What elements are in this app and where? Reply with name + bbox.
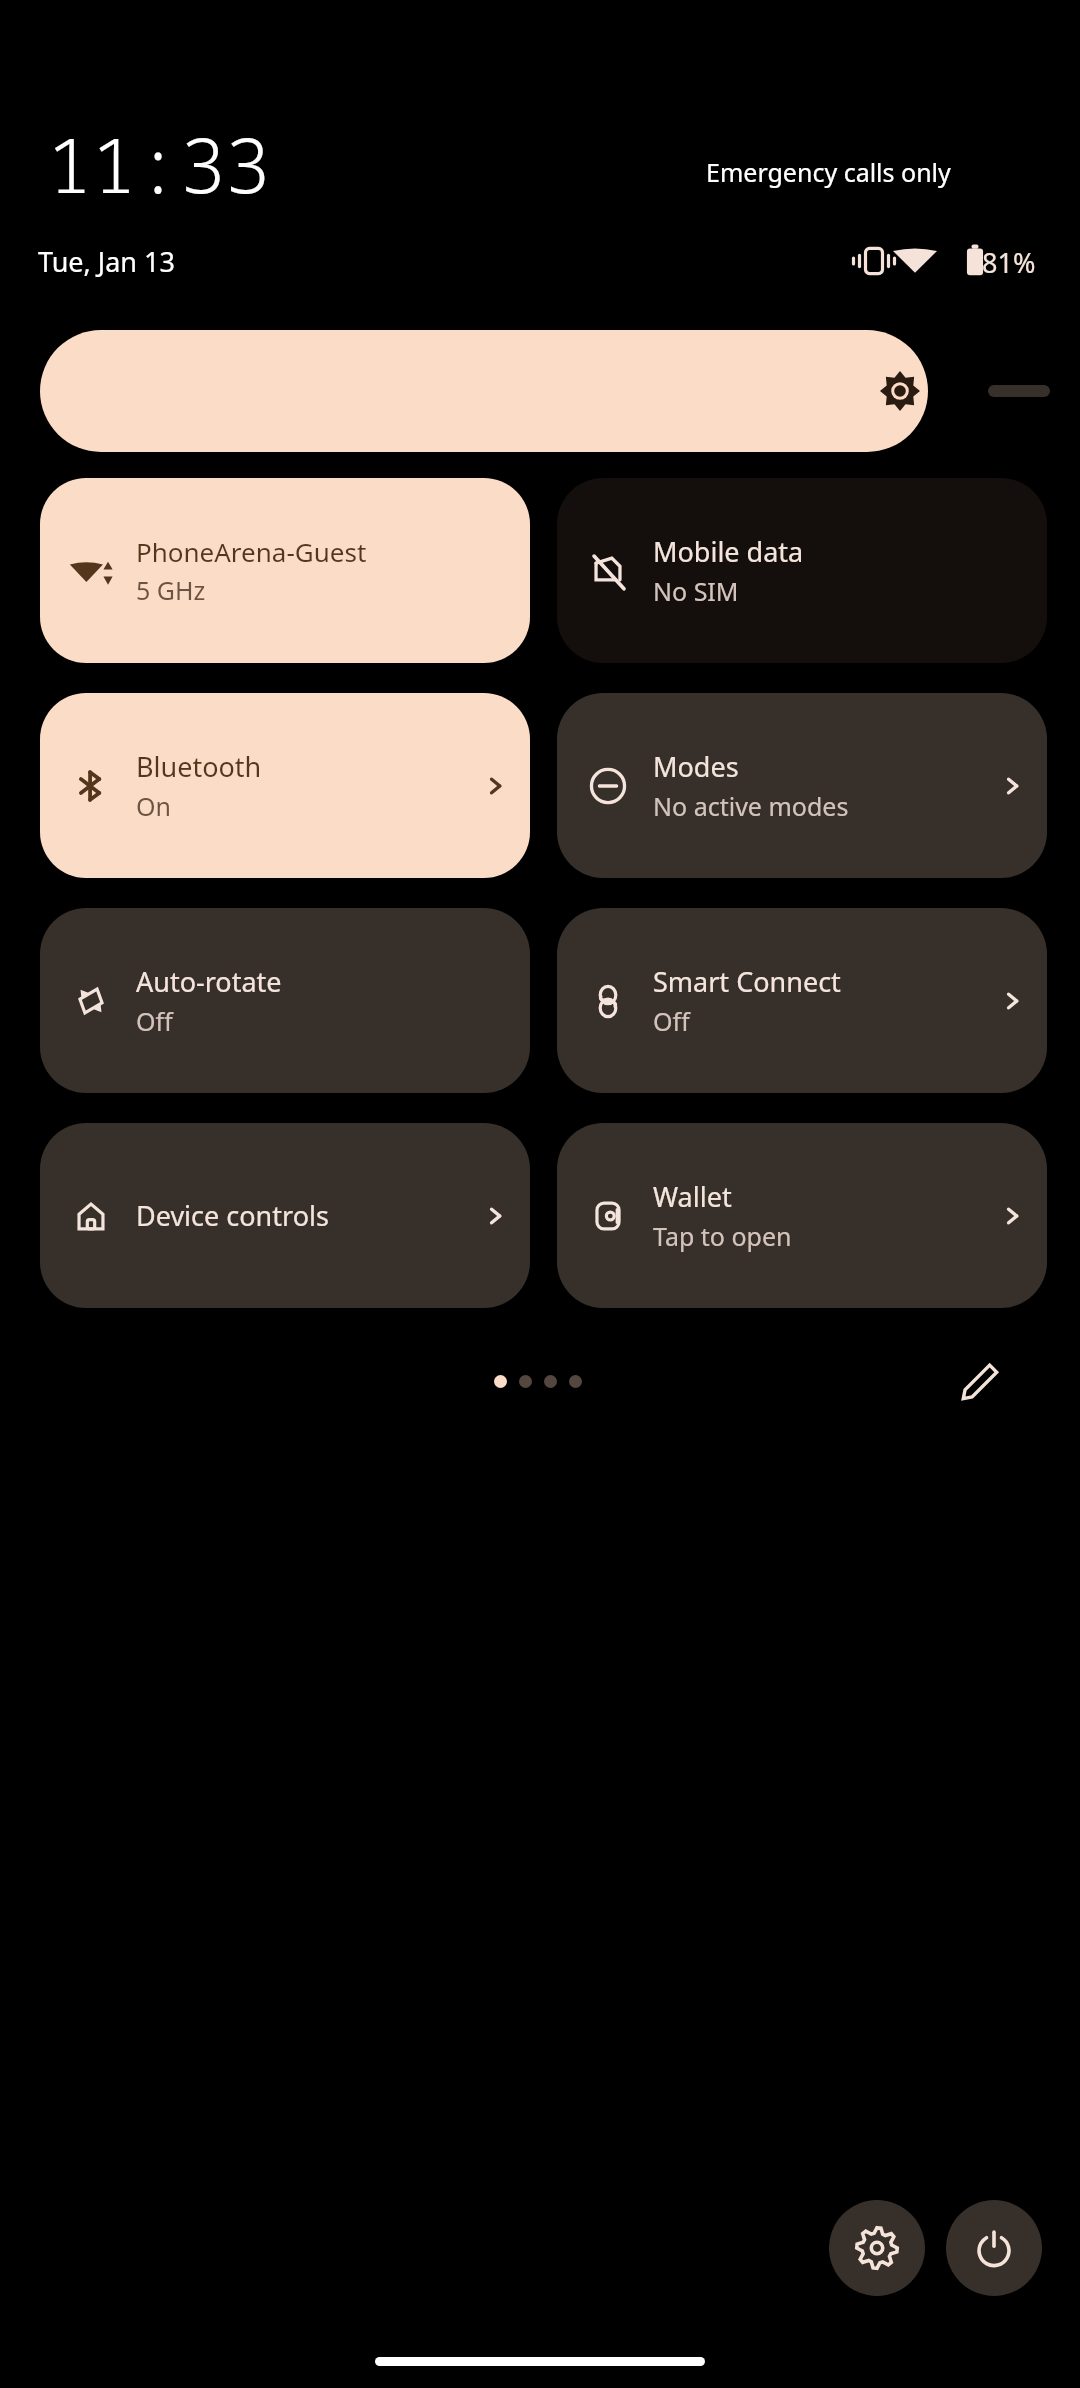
button[interactable]: Wallet <box>557 1123 1047 1308</box>
staticText: 11:33 <box>46 112 269 216</box>
staticText: Off <box>136 1004 173 1038</box>
staticText: Off <box>653 1004 690 1038</box>
staticText: Tap to open <box>653 1219 792 1253</box>
staticText: Emergency calls only <box>706 155 951 189</box>
button[interactable]: Auto-rotate <box>40 908 530 1093</box>
staticText: Wallet <box>653 1178 732 1215</box>
staticText: Tue, Jan 13 <box>38 243 175 280</box>
staticText: 81% <box>982 244 1036 281</box>
button[interactable]: Device controls <box>40 1123 530 1308</box>
button[interactable]: Settings <box>829 2200 925 2296</box>
button[interactable]: Power <box>946 2200 1042 2296</box>
staticText: Smart Connect <box>653 963 841 1000</box>
button[interactable]: Bluetooth <box>40 693 530 878</box>
staticText: Device controls <box>136 1197 329 1234</box>
staticText: 5 GHz <box>136 573 206 607</box>
staticText: Auto-rotate <box>136 963 282 1000</box>
staticText: PhoneArena-Guest <box>136 534 367 569</box>
staticText: Mobile data <box>653 533 804 570</box>
staticText: Modes <box>653 748 739 785</box>
button[interactable]: Smart Connect <box>557 908 1047 1093</box>
button[interactable]: PhoneArena-Guest <box>40 478 530 663</box>
staticText: No SIM <box>653 574 739 608</box>
button[interactable]: Modes <box>557 693 1047 878</box>
staticText: Bluetooth <box>136 748 262 785</box>
button[interactable]: Edit tiles <box>944 1345 1016 1417</box>
button[interactable]: Brightness <box>40 330 928 452</box>
button[interactable]: Mobile data <box>557 478 1047 663</box>
staticText: No active modes <box>653 789 849 823</box>
staticText: On <box>136 789 171 823</box>
